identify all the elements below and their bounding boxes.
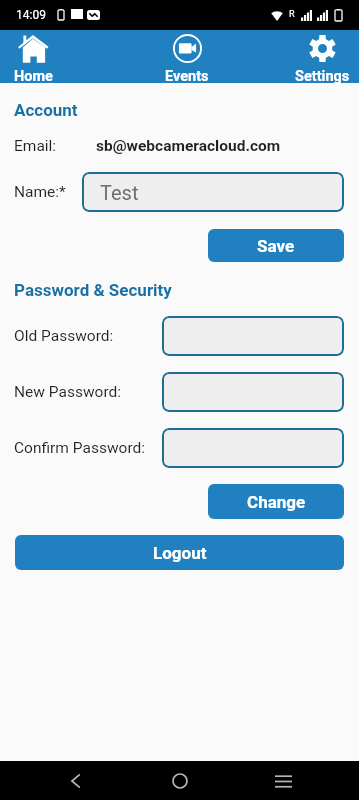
button[interactable]: Logout: [15, 535, 344, 570]
staticText: Email:: [14, 137, 96, 155]
button[interactable]: [162, 428, 344, 468]
staticText: Change: [247, 492, 306, 512]
button[interactable]: Home: [163, 764, 197, 798]
button[interactable]: Recent apps: [266, 764, 300, 798]
staticText: Confirm Password:: [14, 439, 162, 457]
button[interactable]: [162, 316, 344, 356]
staticText: sb@webcameracloud.com: [96, 137, 281, 155]
button[interactable]: Save: [208, 229, 344, 262]
button[interactable]: Home: [0, 30, 91, 83]
staticText: New Password:: [14, 383, 162, 401]
staticText: Password & Security: [14, 280, 172, 300]
staticText: Test: [100, 181, 139, 204]
staticText: Home: [14, 68, 53, 85]
staticText: Old Password:: [14, 327, 162, 345]
staticText: Settings: [295, 68, 350, 85]
staticText: Save: [257, 236, 295, 256]
button[interactable]: Back: [58, 764, 92, 798]
staticText: 14:09: [16, 8, 46, 22]
button[interactable]: Events: [129, 30, 245, 83]
button[interactable]: Settings: [264, 30, 359, 83]
staticText: Events: [165, 68, 209, 85]
staticText: Name:*: [14, 183, 82, 201]
button[interactable]: Test: [82, 172, 344, 212]
staticText: R: [289, 9, 295, 20]
button[interactable]: [162, 372, 344, 412]
button[interactable]: Change: [208, 484, 344, 519]
staticText: Logout: [153, 543, 207, 563]
staticText: Account: [14, 100, 78, 120]
